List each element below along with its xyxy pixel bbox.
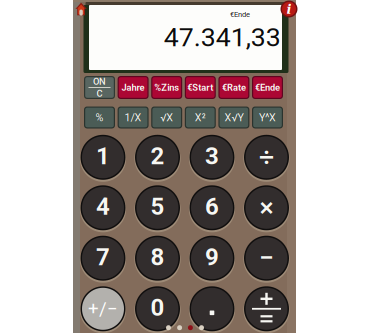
staticText: 1/X [125, 111, 142, 124]
button[interactable]: +/− [80, 286, 125, 331]
staticText: − [259, 242, 274, 273]
staticText: 5 [150, 192, 164, 221]
staticText: 7 [96, 243, 110, 271]
staticText: 0 [150, 293, 164, 322]
button[interactable]: Home [75, 3, 87, 15]
staticText: X√Y [224, 111, 243, 124]
staticText: 2 [150, 142, 164, 170]
button[interactable]: €Ende [252, 76, 283, 99]
staticText: 8 [150, 243, 164, 271]
staticText: X² [195, 111, 206, 124]
button[interactable]: Y^X [252, 106, 283, 128]
button[interactable]: X² [185, 106, 216, 128]
staticText: % [95, 111, 103, 124]
button[interactable]: Info [280, 0, 297, 17]
button[interactable]: √X [151, 106, 182, 128]
button[interactable]: 3 [189, 135, 234, 180]
button[interactable]: €Start [185, 76, 216, 99]
staticText: €Ende [255, 82, 280, 93]
staticText: ON [93, 76, 106, 87]
staticText: €Rate [222, 82, 246, 93]
button[interactable]: 4 [80, 185, 125, 230]
button[interactable]: 8 [135, 236, 180, 281]
button[interactable]: Plus and equals [244, 286, 289, 331]
staticText: 47.341,33 [164, 22, 281, 53]
staticText: × [259, 192, 273, 223]
button[interactable]: Jahre [118, 76, 149, 99]
staticText: ÷ [259, 141, 274, 172]
button[interactable]: × [244, 185, 289, 230]
button[interactable]: 7 [80, 236, 125, 281]
button[interactable]: 6 [189, 185, 234, 230]
button[interactable]: %Zins [151, 76, 182, 99]
button[interactable]: − [244, 236, 289, 281]
button[interactable]: X√Y [218, 106, 249, 128]
staticText: C [96, 88, 102, 99]
button[interactable]: ON [84, 76, 115, 99]
staticText: Y^X [259, 111, 276, 124]
staticText: +/− [88, 298, 118, 320]
button[interactable]: Decimal point [189, 286, 234, 331]
button[interactable]: 0 [135, 286, 180, 331]
staticText: 6 [205, 192, 219, 221]
staticText: %Zins [154, 82, 179, 93]
button[interactable]: 9 [189, 236, 234, 281]
button[interactable]: 5 [135, 185, 180, 230]
staticText: Jahre [122, 82, 145, 93]
staticText: 3 [205, 142, 219, 170]
button[interactable]: ÷ [244, 135, 289, 180]
button[interactable]: 1/X [118, 106, 149, 128]
staticText: 1 [96, 142, 110, 170]
staticText: √X [160, 111, 173, 124]
button[interactable]: €Rate [218, 76, 249, 99]
button[interactable]: 1 [80, 135, 125, 180]
staticText: €Ende [230, 10, 250, 19]
staticText: i [286, 1, 291, 17]
staticText: 9 [205, 243, 219, 271]
button[interactable]: % [84, 106, 115, 128]
staticText: 4 [96, 192, 110, 221]
staticText: €Start [187, 82, 213, 93]
button[interactable]: 2 [135, 135, 180, 180]
